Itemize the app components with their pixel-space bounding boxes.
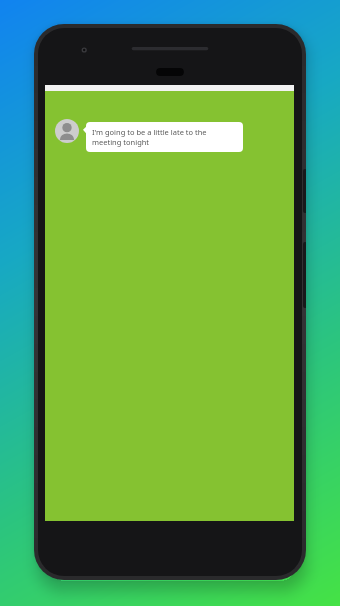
button[interactable]: Contact avatar (55, 119, 240, 149)
staticText: I'm going to be a little late to the mee… (92, 127, 237, 147)
other: Contact avatar (55, 119, 79, 143)
